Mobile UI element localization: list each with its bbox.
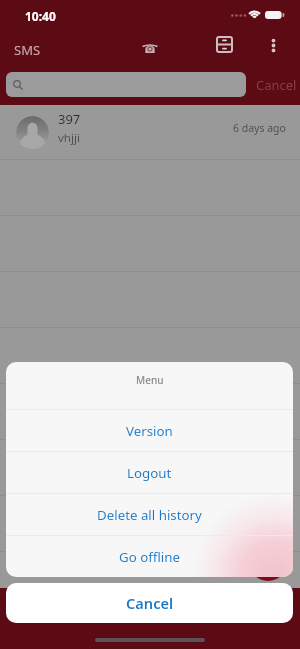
button[interactable] xyxy=(6,72,246,97)
button[interactable]: Delete all history xyxy=(6,494,293,535)
button[interactable]: New message xyxy=(249,543,287,581)
staticText: Delete all history xyxy=(97,506,202,524)
staticText: 397 xyxy=(58,110,81,128)
button[interactable]: Cancel xyxy=(6,583,293,623)
staticText: Cancel xyxy=(126,593,174,613)
staticText: Menu xyxy=(136,373,164,387)
staticText: Go offline xyxy=(119,548,180,566)
staticText: Version xyxy=(126,422,173,440)
staticText: Logout xyxy=(127,464,172,482)
button[interactable]: Logout xyxy=(6,452,293,493)
staticText: 6 days ago xyxy=(233,121,286,135)
button[interactable]: 397 xyxy=(0,105,300,159)
button[interactable]: Go offline xyxy=(6,536,293,577)
button[interactable]: Version xyxy=(6,410,293,451)
staticText: SMS xyxy=(14,41,41,59)
staticText: Cancel xyxy=(256,76,297,94)
button[interactable]: More options xyxy=(261,33,286,58)
staticText: vhjji xyxy=(58,130,80,146)
button[interactable]: Archive xyxy=(211,31,238,58)
staticText: 10:40 xyxy=(25,8,56,24)
button[interactable]: Call xyxy=(136,34,163,61)
button[interactable]: Cancel xyxy=(256,76,297,94)
